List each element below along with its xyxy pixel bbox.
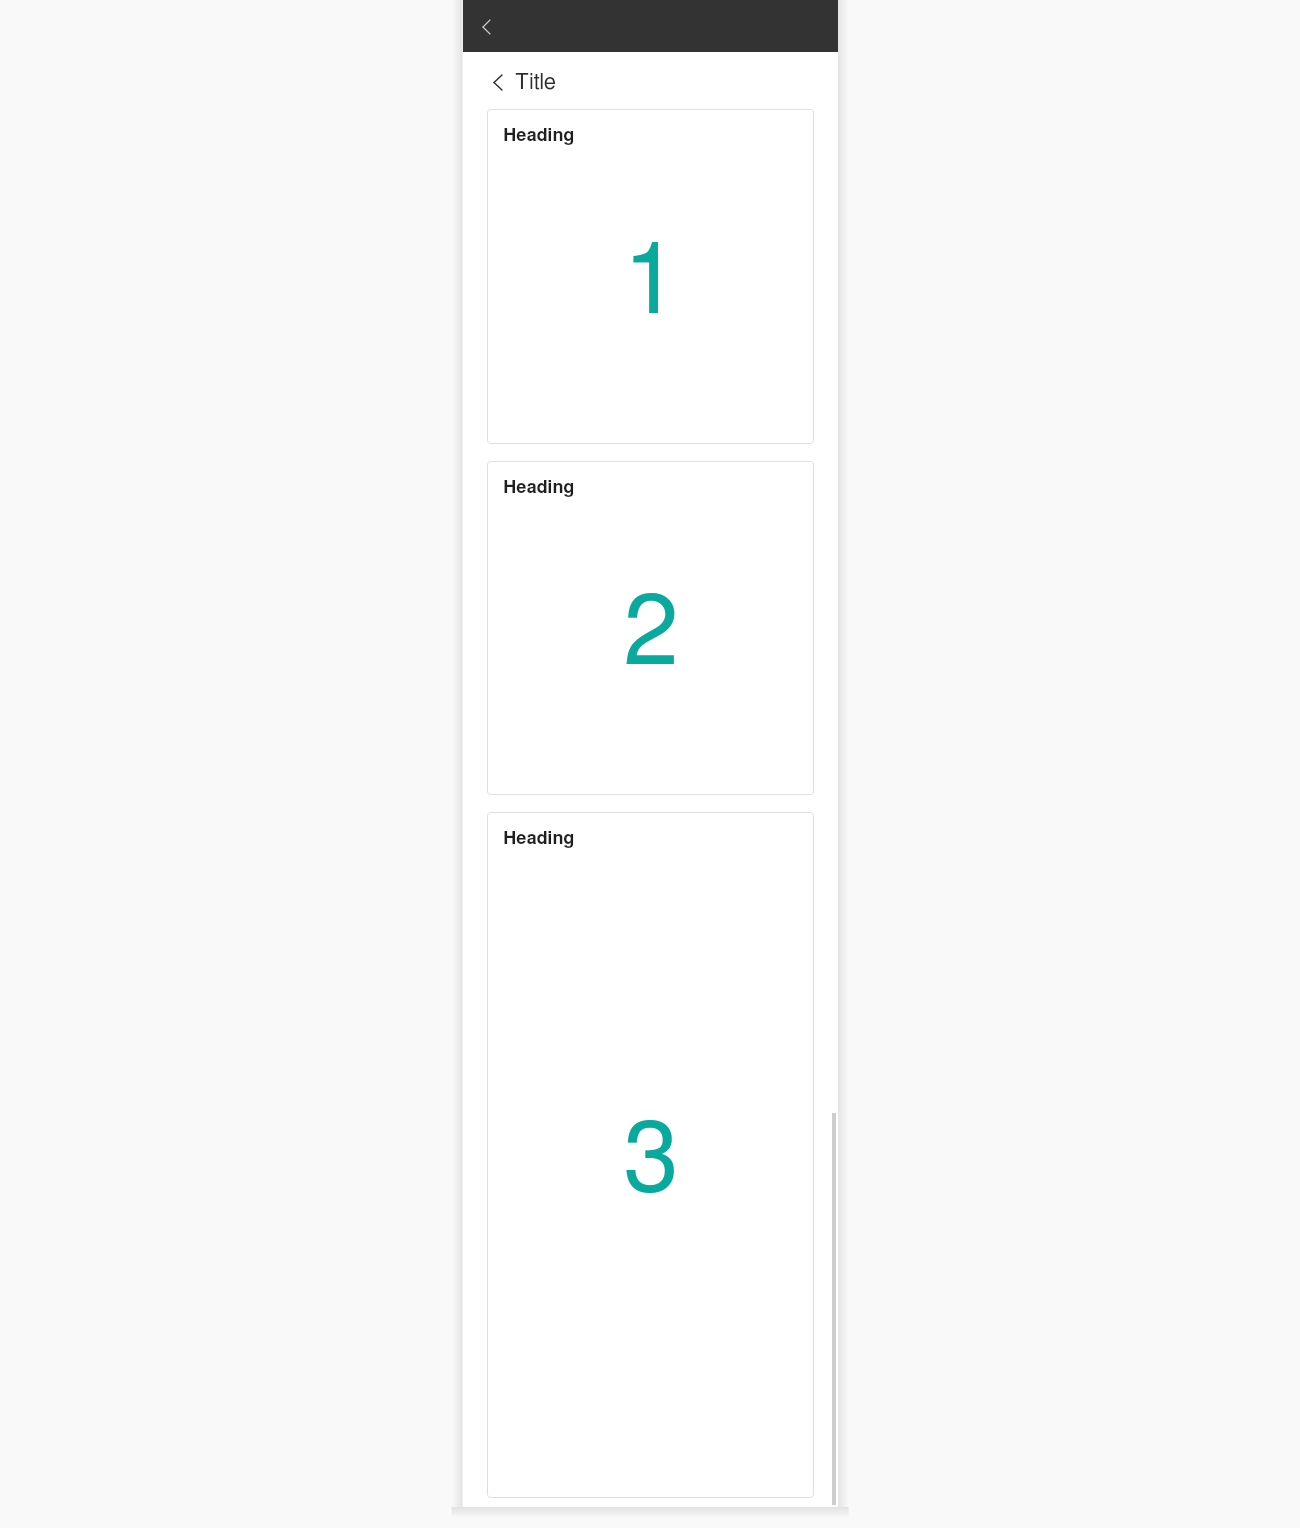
staticText: 1 xyxy=(623,233,679,333)
button[interactable]: Heading xyxy=(487,812,814,1498)
staticText: Heading xyxy=(503,479,575,497)
button[interactable]: Heading xyxy=(487,461,814,795)
button[interactable]: Back xyxy=(474,15,498,39)
button[interactable]: Heading xyxy=(487,109,814,444)
staticText: 3 xyxy=(623,1111,679,1211)
staticText: Heading xyxy=(503,830,575,848)
button[interactable]: Back xyxy=(484,68,512,96)
staticText: Heading xyxy=(503,127,575,145)
staticText: Title xyxy=(515,71,556,93)
staticText: 2 xyxy=(623,584,679,684)
